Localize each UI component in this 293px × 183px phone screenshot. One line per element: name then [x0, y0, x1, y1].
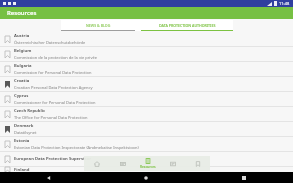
staticText: Datatilsynet — [14, 130, 37, 135]
staticText: Österreichischer Datenschutzbehörde — [14, 40, 86, 45]
other: Home — [144, 176, 148, 180]
staticText: Resources — [7, 9, 37, 17]
other: Save — [5, 156, 10, 163]
button[interactable]: Save — [0, 32, 293, 46]
other: Save — [5, 66, 10, 73]
button[interactable]: Resources — [135, 156, 160, 171]
staticText: Commission for Personal Data Protection — [14, 70, 92, 75]
staticText: Commissioner for Personal Data Protectio… — [14, 100, 96, 105]
staticText: Croatia — [14, 78, 30, 84]
staticText: Finland — [14, 167, 30, 172]
button[interactable]: Save — [0, 152, 293, 166]
other: Saved — [5, 126, 10, 133]
button[interactable]: DATA PROTECTION AUTHORITIES — [141, 20, 233, 31]
button[interactable]: Save — [0, 62, 293, 76]
button[interactable]: News — [110, 156, 135, 171]
other: Save — [5, 36, 10, 43]
other: Save — [5, 51, 10, 58]
staticText: Estonia — [14, 138, 30, 144]
other: Save — [5, 96, 10, 103]
button[interactable]: Saved — [0, 122, 293, 136]
button[interactable]: Saved — [0, 77, 293, 91]
button[interactable]: Save — [0, 137, 293, 151]
other: Save — [5, 111, 10, 118]
button[interactable]: Save — [0, 167, 293, 172]
staticText: 11:48 — [279, 1, 290, 6]
staticText: Czech Republic — [14, 108, 46, 114]
button[interactable]: Save — [0, 47, 293, 61]
staticText: Commission de la protection de la vie pr… — [14, 55, 97, 60]
staticText: Croatian Personal Data Protection Agency — [14, 85, 93, 90]
staticText: Austria — [14, 33, 30, 39]
button[interactable]: Saved — [185, 156, 210, 171]
button[interactable]: Save — [0, 107, 293, 121]
other: Saved — [5, 81, 10, 88]
other: Back — [47, 176, 51, 180]
staticText: Estonian Data Protection Inspectorate (A… — [14, 145, 139, 150]
staticText: DATA PROTECTION AUTHORITIES — [159, 23, 216, 28]
staticText: NEWS & BLOG — [86, 23, 111, 28]
staticText: Bulgaria — [14, 63, 32, 69]
button[interactable]: Quiz — [160, 156, 185, 171]
staticText: Cyprus — [14, 93, 29, 99]
staticText: Belgium — [14, 48, 32, 54]
staticText: European Data Protection Supervisor — [14, 156, 92, 162]
other: Save — [5, 141, 10, 148]
staticText: The Office for Personal Data Protection — [14, 115, 88, 120]
staticText: Resources — [140, 165, 156, 169]
other: Save — [5, 167, 10, 172]
button[interactable]: NEWS & BLOG — [61, 20, 135, 31]
staticText: Denmark — [14, 123, 34, 129]
button[interactable]: Save — [0, 92, 293, 106]
button[interactable]: Home — [84, 156, 110, 171]
